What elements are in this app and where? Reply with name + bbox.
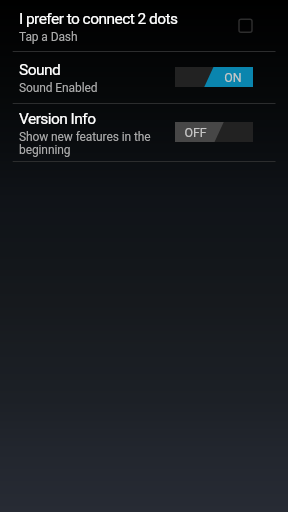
staticText: OFF [184,125,207,140]
staticText: Sound Enabled [19,81,98,95]
button[interactable]: I prefer to connect 2 dots [0,0,288,51]
button[interactable]: Sound [0,51,288,103]
staticText: I prefer to connect 2 dots [19,10,178,28]
staticText: Tap a Dash [19,30,78,44]
button[interactable]: I prefer to connect 2 dots checkbox [238,18,253,33]
staticText: Show new features in the beginning [19,130,151,157]
staticText: ON [224,70,242,85]
staticText: Sound [19,61,61,79]
button[interactable]: Switch, off [175,122,253,142]
staticText: Version Info [19,110,96,128]
button[interactable]: Switch, on [175,67,253,87]
button[interactable]: Version Info [0,103,288,161]
